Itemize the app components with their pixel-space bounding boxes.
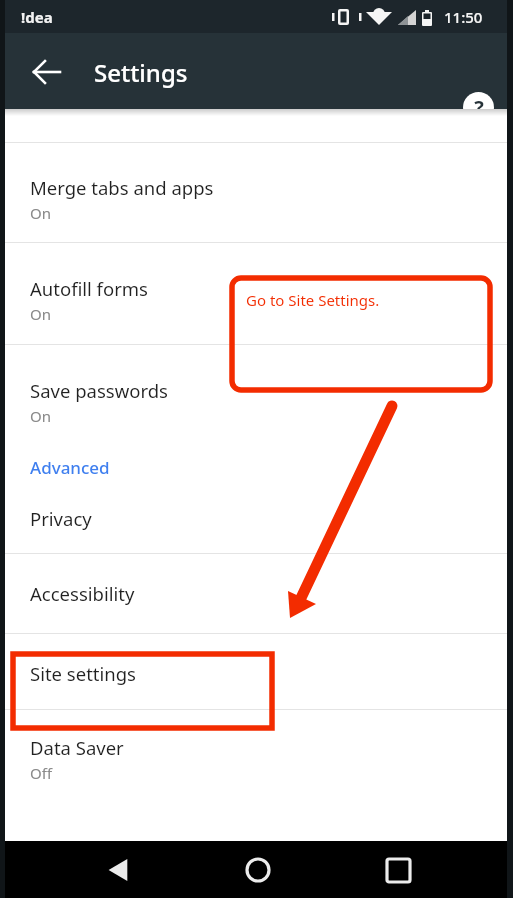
staticText: Autofill forms <box>30 276 148 301</box>
button[interactable]: Home <box>231 843 285 897</box>
button[interactable]: Data Saver <box>0 710 513 806</box>
button[interactable]: Back <box>92 843 146 897</box>
staticText: Settings <box>94 56 188 89</box>
button[interactable]: Back <box>26 51 68 93</box>
staticText: Advanced <box>30 456 110 479</box>
button[interactable]: Recent apps <box>371 843 425 897</box>
staticText: On <box>30 203 51 223</box>
button[interactable]: Accessibility <box>0 554 513 634</box>
staticText: On <box>30 304 51 324</box>
staticText: Merge tabs and apps <box>30 175 214 200</box>
button[interactable]: Merge tabs and apps <box>0 143 513 243</box>
staticText: Off <box>30 763 53 783</box>
staticText: On <box>30 406 51 426</box>
button[interactable]: Save passwords <box>0 345 513 448</box>
staticText: Privacy <box>30 506 92 531</box>
staticText: ? <box>474 94 484 121</box>
button[interactable]: Site settings <box>0 634 513 710</box>
staticText: Save passwords <box>30 378 168 403</box>
staticText: 11:50 <box>444 7 483 27</box>
button[interactable]: Privacy <box>0 490 513 554</box>
staticText: Accessibility <box>30 581 135 606</box>
button[interactable]: Autofill forms <box>0 243 513 345</box>
staticText: Site settings <box>30 661 136 686</box>
staticText: !dea <box>21 7 53 27</box>
button[interactable]: Help <box>456 85 500 129</box>
staticText: Data Saver <box>30 735 124 760</box>
staticText: Go to Site Settings. <box>246 290 380 310</box>
